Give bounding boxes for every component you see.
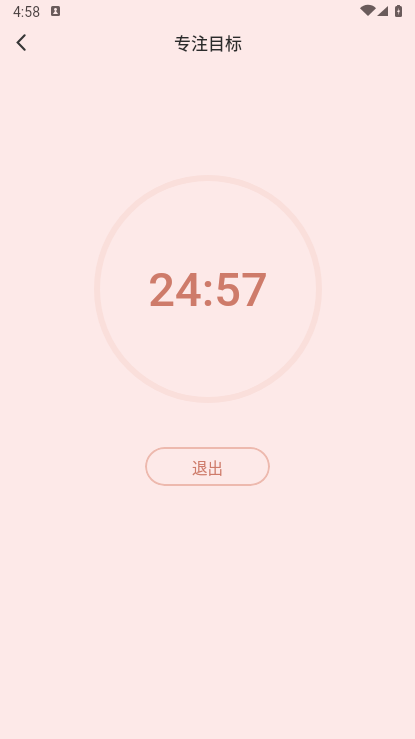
button[interactable]: 退出 bbox=[145, 447, 270, 486]
button[interactable]: Back bbox=[0, 24, 44, 64]
staticText: 4:58 bbox=[13, 4, 40, 20]
staticText: 专注目标 bbox=[174, 30, 242, 55]
staticText: 退出 bbox=[192, 456, 224, 478]
staticText: 24:57 bbox=[148, 262, 268, 317]
